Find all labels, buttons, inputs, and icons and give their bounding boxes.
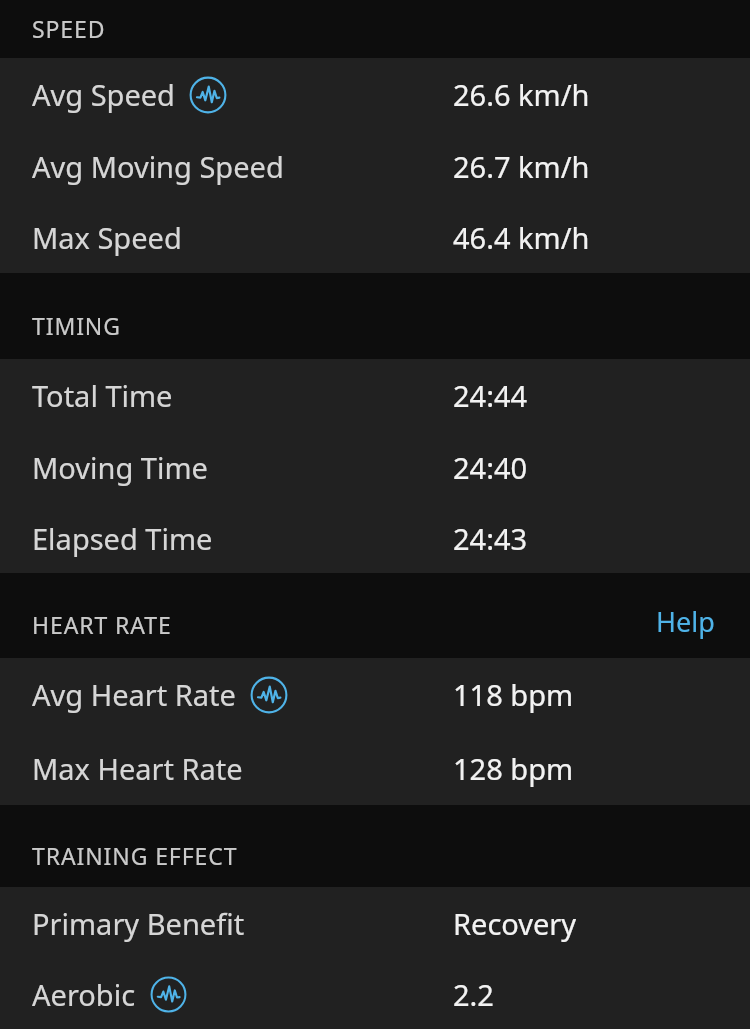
- button[interactable]: Primary Benefit: [0, 887, 750, 959]
- staticText: 24:44: [453, 376, 528, 415]
- button[interactable]: Avg Moving Speed: [0, 130, 750, 202]
- staticText: Help: [656, 603, 715, 640]
- staticText: TIMING: [32, 310, 121, 341]
- button[interactable]: Aerobic: [0, 959, 750, 1029]
- button[interactable]: Elapsed Time: [0, 503, 750, 573]
- staticText: Avg Moving Speed: [32, 147, 284, 186]
- staticText: Avg Heart Rate: [32, 675, 236, 714]
- button[interactable]: Avg Speed: [0, 58, 750, 130]
- staticText: 46.4 km/h: [453, 218, 590, 257]
- staticText: Avg Speed: [32, 75, 175, 114]
- staticText: HEART RATE: [32, 609, 172, 640]
- staticText: 26.6 km/h: [453, 75, 590, 114]
- button[interactable]: Moving Time: [0, 431, 750, 503]
- staticText: Primary Benefit: [32, 904, 245, 943]
- staticText: Recovery: [453, 904, 577, 943]
- staticText: 26.7 km/h: [453, 147, 590, 186]
- staticText: TRAINING EFFECT: [32, 840, 238, 871]
- staticText: Elapsed Time: [32, 519, 213, 558]
- button[interactable]: Avg Heart Rate: [0, 658, 750, 731]
- staticText: SPEED: [32, 13, 106, 44]
- staticText: 118 bpm: [453, 675, 574, 714]
- staticText: 24:40: [453, 448, 528, 487]
- staticText: 2.2: [453, 975, 494, 1014]
- button[interactable]: Max Heart Rate: [0, 731, 750, 805]
- staticText: 24:43: [453, 519, 528, 558]
- staticText: Moving Time: [32, 448, 208, 487]
- staticText: Aerobic: [32, 975, 136, 1014]
- other: Data source info: [189, 76, 227, 114]
- other: Data source info: [150, 976, 187, 1013]
- staticText: Max Heart Rate: [32, 749, 243, 788]
- button[interactable]: Max Speed: [0, 202, 750, 273]
- staticText: Max Speed: [32, 218, 182, 257]
- button[interactable]: Help: [656, 603, 715, 640]
- staticText: Total Time: [32, 376, 173, 415]
- staticText: 128 bpm: [453, 749, 574, 788]
- button[interactable]: Total Time: [0, 359, 750, 431]
- other: Data source info: [250, 676, 288, 714]
